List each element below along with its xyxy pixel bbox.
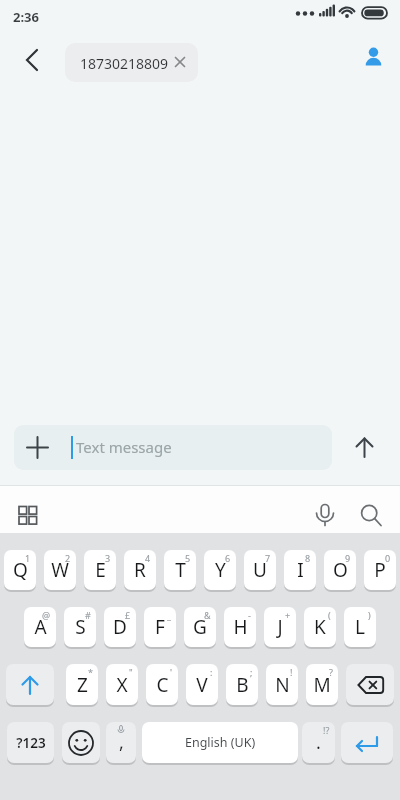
button[interactable]: N (266, 664, 298, 705)
button[interactable]: Y (204, 550, 236, 590)
button[interactable] (348, 431, 381, 464)
staticText: J (277, 614, 283, 640)
button[interactable]: S (64, 607, 96, 647)
staticText: 5 (185, 552, 191, 564)
staticText: K (314, 614, 326, 640)
staticText: + (285, 609, 291, 621)
button[interactable]: . (302, 722, 335, 763)
staticText: ' (170, 666, 173, 678)
staticText: M (313, 672, 331, 698)
staticText: H (233, 614, 248, 640)
staticText: V (196, 672, 208, 698)
staticText: 7 (265, 552, 271, 564)
button[interactable] (341, 722, 393, 763)
button[interactable]: Text message (14, 425, 332, 470)
button[interactable]: O (324, 550, 356, 590)
staticText: Z (77, 672, 88, 698)
staticText: X (116, 672, 128, 698)
staticText: . (316, 730, 321, 755)
staticText: 1 (25, 552, 31, 564)
staticText: Q (13, 557, 28, 583)
button[interactable]: English (UK) (142, 722, 298, 763)
staticText: !? (323, 724, 330, 736)
staticText: E (95, 557, 106, 583)
button[interactable]: D (104, 607, 136, 647)
button[interactable] (16, 503, 42, 529)
button[interactable]: K (304, 607, 336, 647)
button[interactable]: H (224, 607, 256, 647)
button[interactable] (358, 502, 384, 530)
button[interactable]: B (226, 664, 258, 705)
staticText: A (34, 614, 47, 640)
button[interactable]: L (344, 607, 376, 647)
staticText: G (193, 614, 207, 640)
staticText: 8 (305, 552, 311, 564)
button[interactable]: M (306, 664, 338, 705)
staticText: 6 (225, 552, 231, 564)
staticText: B (236, 672, 249, 698)
staticText: ; (250, 666, 253, 678)
button[interactable]: G (184, 607, 216, 647)
staticText: U (253, 557, 267, 583)
button[interactable]: 18730218809 (65, 43, 198, 82)
staticText: , (119, 730, 124, 755)
staticText: ? (329, 666, 333, 678)
staticText: & (204, 609, 211, 621)
staticText: W (51, 557, 69, 583)
staticText: ( (328, 609, 331, 621)
button[interactable] (312, 501, 338, 529)
staticText: I (297, 557, 304, 583)
staticText: R (134, 557, 146, 583)
staticText: C (156, 672, 169, 698)
staticText: 3 (105, 552, 111, 564)
staticText: 4 (145, 552, 151, 564)
staticText: T (175, 557, 186, 583)
staticText: - (248, 609, 251, 621)
button[interactable] (62, 722, 100, 763)
staticText: P (374, 557, 386, 583)
staticText: £ (125, 609, 131, 621)
staticText: 2 (65, 552, 71, 564)
button[interactable] (16, 44, 48, 76)
staticText: L (355, 614, 365, 640)
staticText: " (129, 666, 133, 678)
staticText: 18730218809 (80, 54, 169, 73)
staticText: : (210, 666, 213, 678)
button[interactable] (346, 664, 394, 705)
button[interactable]: P (364, 550, 396, 590)
staticText: Y (215, 557, 226, 583)
button[interactable]: U (244, 550, 276, 590)
staticText: 0 (385, 552, 391, 564)
button[interactable]: T (164, 550, 196, 590)
button[interactable]: R (124, 550, 156, 590)
button[interactable]: , (106, 722, 136, 763)
staticText: D (113, 614, 127, 640)
button[interactable]: I (284, 550, 316, 590)
staticText: ) (368, 609, 371, 621)
staticText: _ (167, 609, 171, 621)
staticText: N (275, 672, 290, 698)
staticText: English (UK) (185, 734, 256, 751)
button[interactable]: W (44, 550, 76, 590)
staticText: * (88, 666, 93, 678)
staticText: @ (42, 609, 51, 621)
button[interactable]: Z (66, 664, 98, 705)
staticText: O (333, 557, 348, 583)
button[interactable]: X (106, 664, 138, 705)
button[interactable]: ?123 (7, 722, 54, 763)
button[interactable] (6, 664, 54, 705)
staticText: 2:36 (13, 8, 39, 26)
button[interactable]: C (146, 664, 178, 705)
staticText: ! (290, 666, 293, 678)
staticText: F (155, 614, 165, 640)
button[interactable]: Q (4, 550, 36, 590)
staticText: 9 (345, 552, 351, 564)
button[interactable]: A (24, 607, 56, 647)
button[interactable]: E (84, 550, 116, 590)
staticText: ?123 (16, 734, 46, 752)
button[interactable]: F (144, 607, 176, 647)
button[interactable]: V (186, 664, 218, 705)
button[interactable] (357, 41, 389, 73)
button[interactable]: J (264, 607, 296, 647)
staticText: S (75, 614, 86, 640)
